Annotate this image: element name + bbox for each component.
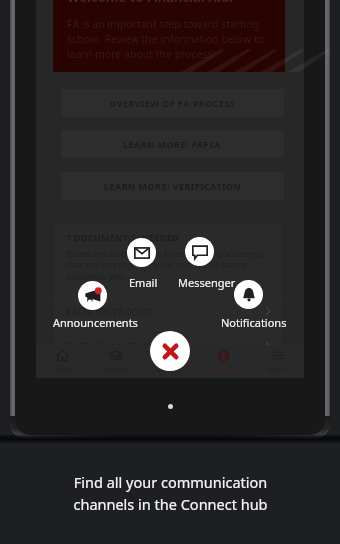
staticText: Classes xyxy=(157,365,182,375)
staticText: Announcements xyxy=(53,315,138,330)
staticText: Welcome to Financial Aid. xyxy=(67,0,233,6)
staticText: Find all your communication channels in … xyxy=(73,472,268,514)
button[interactable]: LEARN MORE: VERIFICATION xyxy=(61,172,284,200)
button[interactable]: Close xyxy=(150,331,190,371)
button[interactable]: Messenger xyxy=(185,237,214,266)
staticText: LEARN MORE: FAFSA xyxy=(123,138,222,150)
staticText: FAFSA (2018-2019) xyxy=(66,340,153,354)
staticText: FAFSA (2019-2020) xyxy=(66,305,153,319)
button[interactable]: Announcements xyxy=(78,281,107,310)
staticText: FA is an important step toward starting … xyxy=(67,17,268,61)
button[interactable]: Financial Aid xyxy=(196,349,250,375)
button[interactable]: OVERVIEW OF FA PROCESS xyxy=(61,89,284,117)
staticText: Email xyxy=(129,275,158,290)
button[interactable]: Classes xyxy=(142,349,196,375)
button[interactable]: Email xyxy=(127,238,156,267)
staticText: Below are outstanding financial aid docu… xyxy=(66,247,272,283)
staticText: Messenger xyxy=(178,275,236,290)
staticText: LEARN MORE: VERIFICATION xyxy=(104,180,242,192)
button[interactable]: Notifications xyxy=(234,280,263,309)
staticText: Financial Aid xyxy=(202,365,244,375)
staticText: OVERVIEW OF FA PROCESS xyxy=(109,97,236,109)
staticText: 7 DOCUMENT(S) NEEDED xyxy=(66,231,179,243)
staticText: Notifications xyxy=(221,315,287,330)
